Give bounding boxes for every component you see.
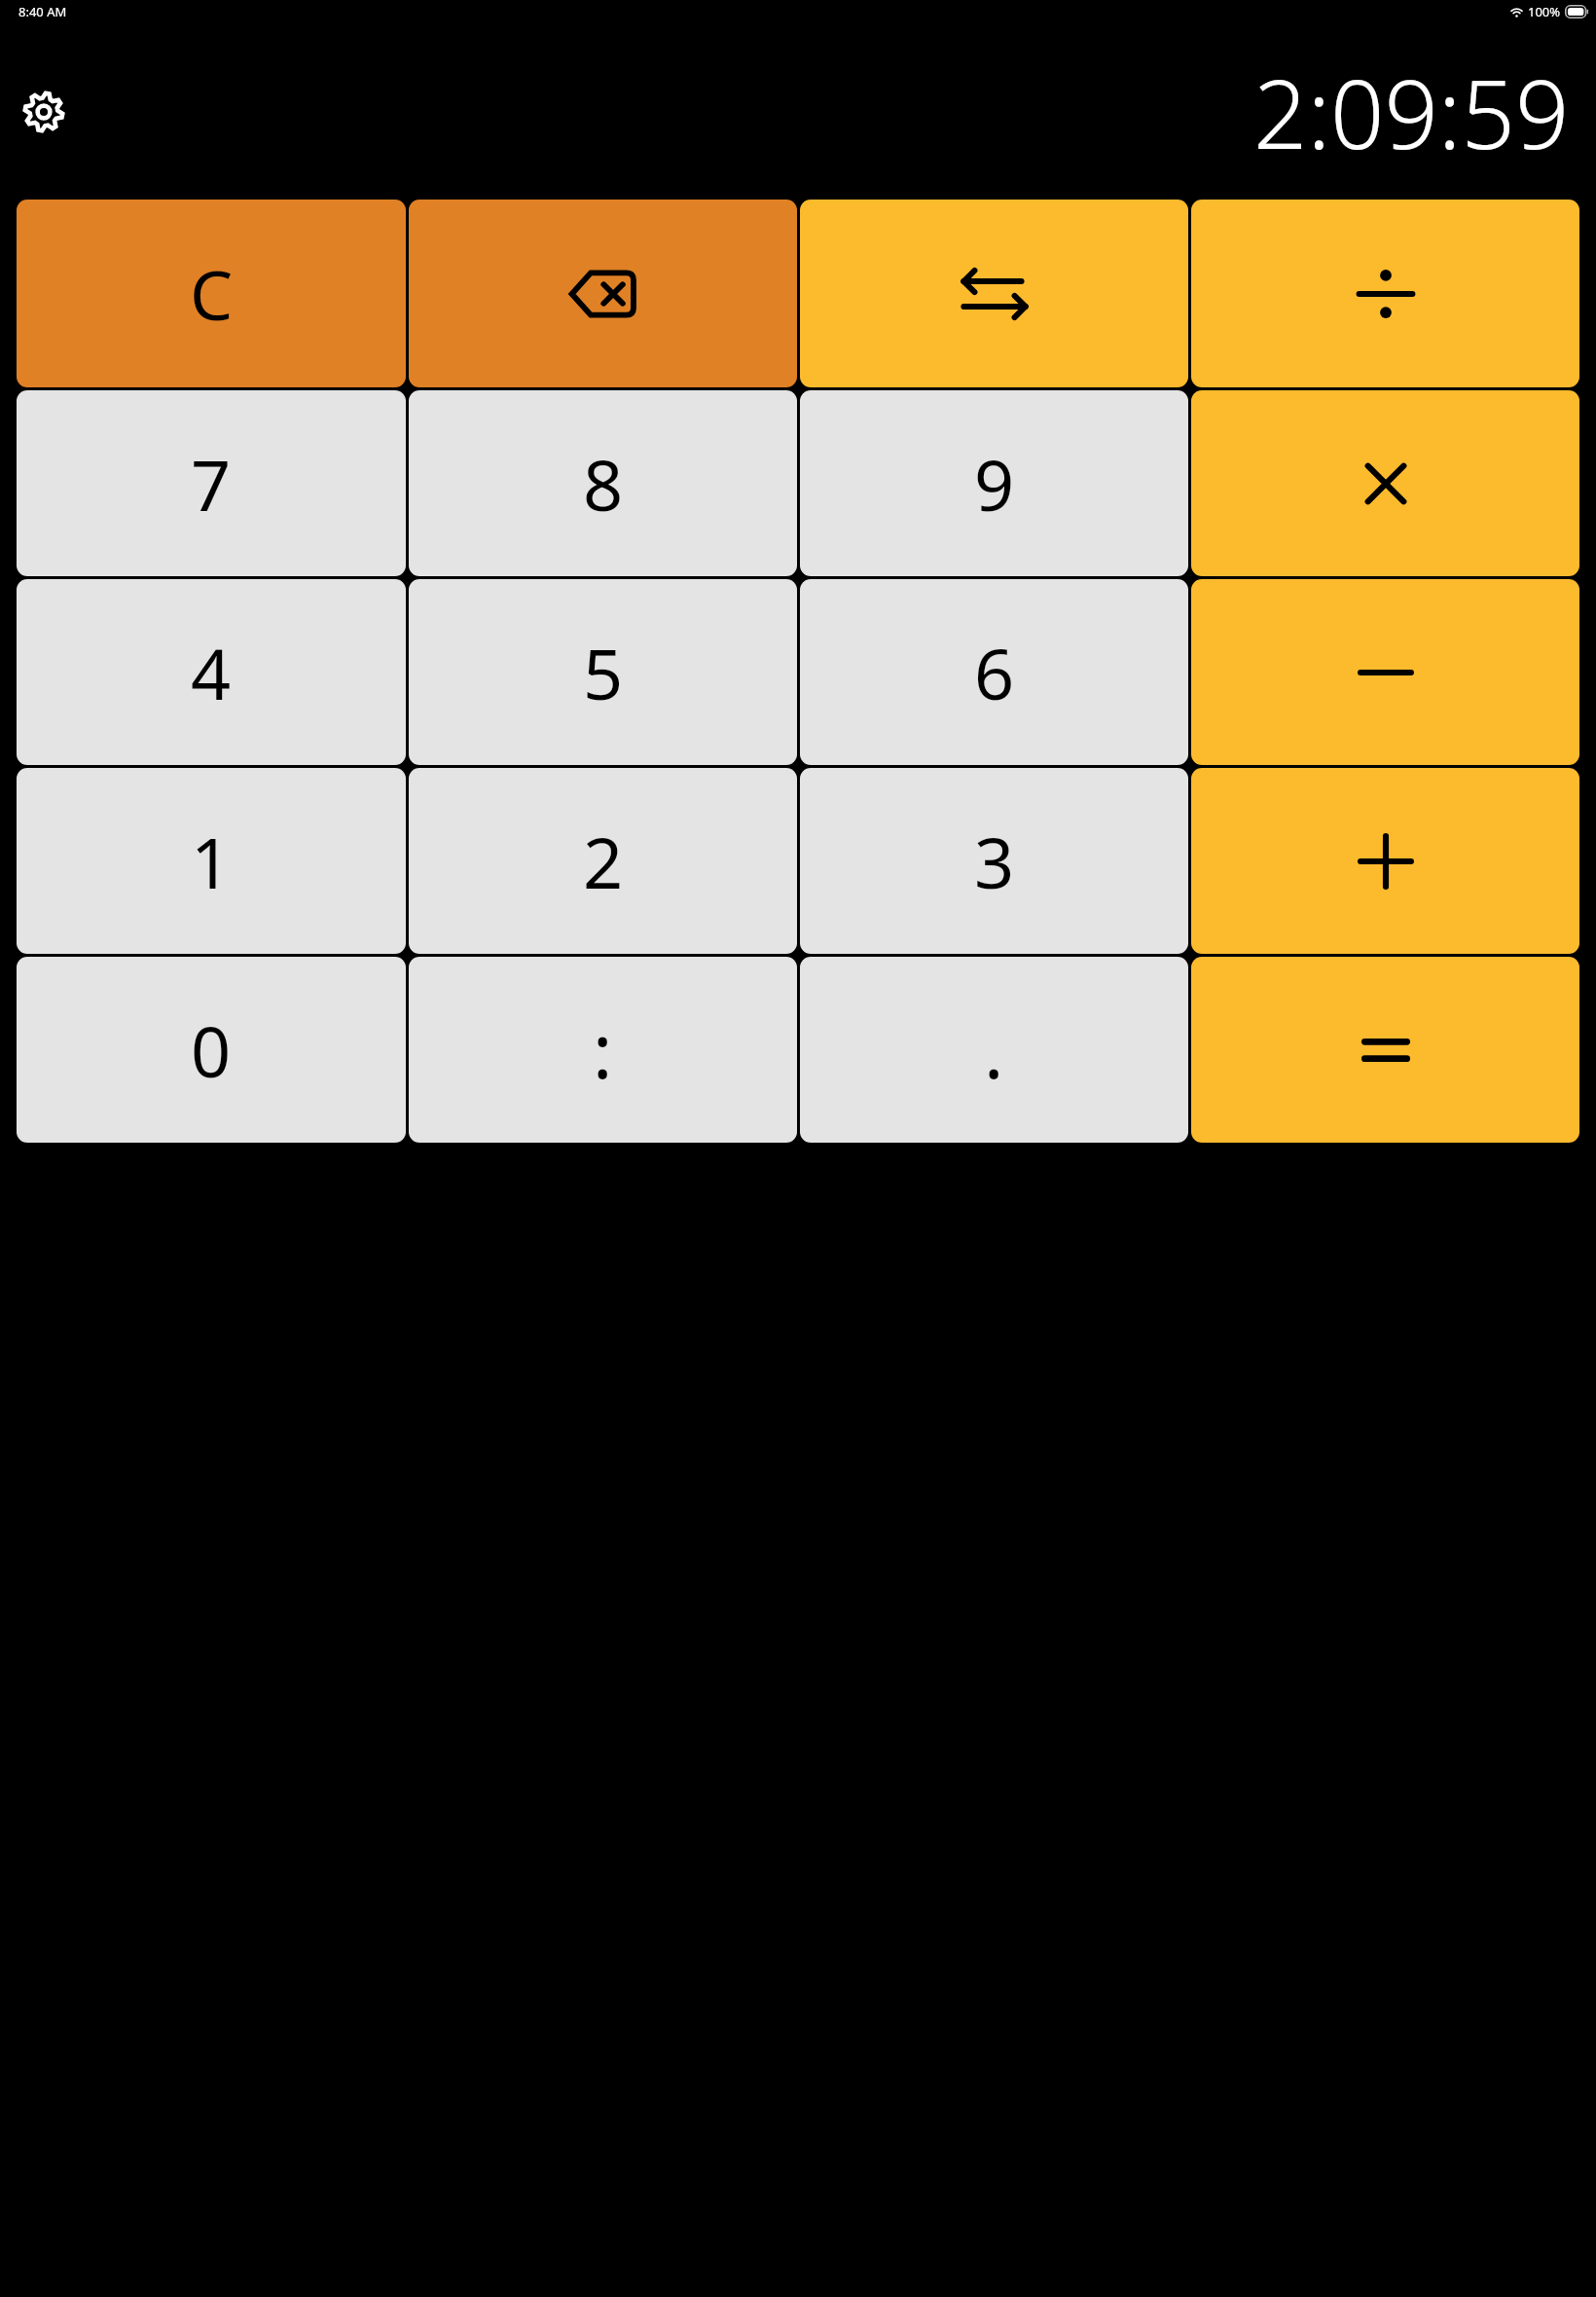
staticText: 3	[974, 814, 1015, 909]
staticText: 7	[191, 436, 232, 531]
staticText: 0	[191, 1003, 232, 1098]
button[interactable]: 1	[17, 768, 406, 954]
staticText: 8	[583, 436, 624, 531]
staticText: 9	[974, 436, 1015, 531]
staticText: 4	[191, 625, 232, 720]
staticText: 5	[583, 625, 624, 720]
staticText: 8:40 AM	[18, 3, 67, 20]
button[interactable]: 6	[800, 579, 1188, 765]
button[interactable]: 0	[17, 957, 406, 1143]
staticText: 2	[583, 814, 624, 909]
staticText: 6	[974, 625, 1015, 720]
staticText: 2:09:59	[1253, 48, 1570, 176]
staticText: :	[593, 1000, 613, 1101]
button[interactable]: Settings	[14, 82, 74, 142]
staticText: 100%	[1528, 3, 1561, 20]
button[interactable]: Backspace	[409, 200, 797, 387]
button[interactable]: Swap operands	[800, 200, 1188, 387]
button[interactable]: .	[800, 957, 1188, 1143]
button[interactable]: 7	[17, 390, 406, 576]
button[interactable]: Divide	[1191, 200, 1579, 387]
staticText: 1	[191, 814, 232, 909]
button[interactable]: 2	[409, 768, 797, 954]
staticText: .	[984, 1000, 1004, 1101]
button[interactable]: 3	[800, 768, 1188, 954]
button[interactable]: 5	[409, 579, 797, 765]
button[interactable]: Plus	[1191, 768, 1579, 954]
button[interactable]: 9	[800, 390, 1188, 576]
button[interactable]: Multiply	[1191, 390, 1579, 576]
button[interactable]: 8	[409, 390, 797, 576]
staticText: C	[190, 247, 234, 340]
button[interactable]: 4	[17, 579, 406, 765]
button[interactable]: C	[17, 200, 406, 387]
button[interactable]: Minus	[1191, 579, 1579, 765]
button[interactable]: Equals	[1191, 957, 1579, 1143]
button[interactable]: :	[409, 957, 797, 1143]
